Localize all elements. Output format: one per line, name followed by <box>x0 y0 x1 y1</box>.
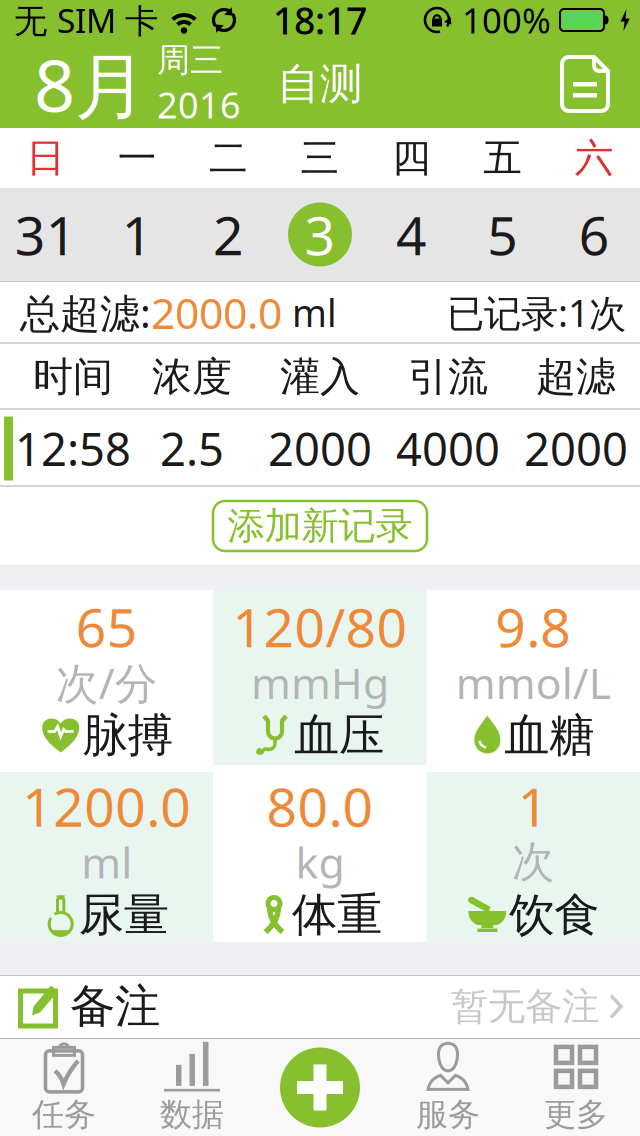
staticText: mmol/L <box>456 654 611 711</box>
staticText: 数据 <box>160 1095 224 1134</box>
button[interactable]: 服务 <box>384 1039 512 1135</box>
staticText: 次/分 <box>56 654 158 711</box>
button[interactable]: 31 <box>0 188 91 281</box>
button[interactable]: 添加 <box>256 1039 384 1135</box>
staticText: ml <box>282 288 337 337</box>
staticText: 四 <box>392 134 431 182</box>
staticText: 周三 <box>157 40 223 80</box>
button[interactable]: 添加新记录 <box>213 501 427 551</box>
staticText: 一 <box>118 134 157 182</box>
staticText: 浓度 <box>152 352 232 401</box>
button[interactable]: 5 <box>457 188 548 281</box>
staticText: 灌入 <box>280 352 360 401</box>
staticText: ml <box>81 834 132 890</box>
staticText: 尿量 <box>79 887 169 943</box>
staticText: 六 <box>575 134 614 182</box>
button[interactable]: 120/80 <box>213 590 427 765</box>
staticText: 120/80 <box>232 591 407 662</box>
button[interactable]: 2 <box>183 188 274 281</box>
staticText: 体重 <box>292 887 382 943</box>
staticText: 二 <box>209 134 248 182</box>
staticText: 五 <box>483 134 522 182</box>
staticText: 更多 <box>544 1095 608 1134</box>
button[interactable]: 1 <box>91 188 183 281</box>
staticText: 无 SIM 卡 <box>14 0 158 42</box>
staticText: 65 <box>76 591 138 662</box>
staticText: 暂无备注 <box>451 984 599 1029</box>
button[interactable]: 65 <box>0 590 213 765</box>
button[interactable]: 6 <box>549 188 640 281</box>
staticText: 任务 <box>32 1095 96 1134</box>
staticText: 自测 <box>277 58 363 110</box>
staticText: 4000 <box>396 418 500 479</box>
staticText: 31 <box>15 199 77 270</box>
staticText: 5 <box>487 199 518 270</box>
button[interactable]: 9.8 <box>427 590 640 765</box>
button[interactable]: 3 <box>274 188 366 281</box>
staticText: 2 <box>213 199 244 270</box>
staticText: 1 <box>122 199 153 270</box>
staticText: 时间 <box>33 352 113 401</box>
staticText: 血压 <box>294 708 384 763</box>
staticText: 2000.0 <box>151 284 282 341</box>
staticText: 2.5 <box>160 418 224 479</box>
staticText: kg <box>295 834 344 890</box>
staticText: 2000 <box>524 418 628 479</box>
staticText: 脉搏 <box>83 708 173 763</box>
button[interactable]: 8月 <box>0 36 241 132</box>
staticText: 三 <box>300 134 339 182</box>
staticText: 100% <box>462 0 551 43</box>
staticText: 添加新记录 <box>227 503 412 549</box>
staticText: 8月 <box>34 36 147 132</box>
staticText: 12:58 <box>15 418 131 479</box>
staticText: 服务 <box>416 1095 480 1134</box>
staticText: 6 <box>579 199 610 270</box>
staticText: 血糖 <box>504 708 594 763</box>
staticText: 9.8 <box>495 591 571 662</box>
staticText: 2000 <box>268 418 372 479</box>
button[interactable]: 1 <box>427 772 640 942</box>
button[interactable]: 80.0 <box>213 772 427 942</box>
button[interactable]: 记录 <box>560 55 640 113</box>
staticText: mmHg <box>251 654 389 711</box>
button[interactable]: 数据 <box>128 1039 256 1135</box>
staticText: 80.0 <box>266 771 373 841</box>
staticText: 备注 <box>70 979 160 1034</box>
staticText: 已记录:1次 <box>447 288 626 337</box>
staticText: 2016 <box>157 81 241 128</box>
button[interactable]: 4 <box>366 188 457 281</box>
staticText: 日 <box>26 134 65 182</box>
staticText: 超滤 <box>536 352 616 401</box>
staticText: 3 <box>304 199 335 270</box>
button[interactable]: 1200.0 <box>0 772 213 942</box>
staticText: 总超滤: <box>20 286 151 339</box>
staticText: 18:17 <box>273 0 367 45</box>
staticText: 4 <box>396 199 427 270</box>
button[interactable]: 任务 <box>0 1039 128 1135</box>
staticText: 1200.0 <box>22 771 191 841</box>
button[interactable]: 更多 <box>512 1039 640 1135</box>
staticText: 1 <box>518 771 549 841</box>
staticText: 引流 <box>408 352 488 401</box>
staticText: 饮食 <box>509 887 599 943</box>
button[interactable]: 备注 <box>0 975 640 1038</box>
staticText: 次 <box>512 836 555 888</box>
